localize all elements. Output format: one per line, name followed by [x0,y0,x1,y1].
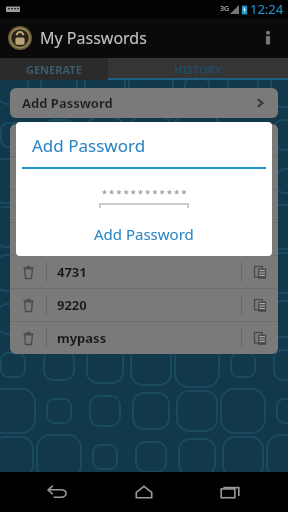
staticText: 9220 [57,296,87,314]
button[interactable]: Add Password [10,88,278,118]
button[interactable]: Delete [10,157,278,189]
button[interactable]: Delete [10,322,46,354]
button[interactable]: Home [116,472,172,512]
staticText: 3G [220,4,230,14]
button[interactable]: Delete [10,124,46,156]
staticText: GENERATE [26,62,82,77]
staticText: Add Password [22,94,113,112]
button[interactable]: Copy [242,256,278,288]
button[interactable]: Delete [10,223,46,255]
button[interactable]: Copy [242,157,278,189]
button[interactable]: Copy [242,289,278,321]
button[interactable]: Copy [242,223,278,255]
staticText: Add Password [32,134,146,157]
staticText: Add Password [94,224,194,244]
button[interactable]: GENERATE [0,58,108,80]
button[interactable]: Delete [10,190,46,222]
button[interactable]: Delete [10,289,278,321]
staticText: 4731 [57,263,87,281]
button[interactable]: Copy [242,322,278,354]
button[interactable]: Delete [10,256,278,288]
button[interactable]: Delete [10,157,46,189]
button[interactable]: Delete [10,256,46,288]
staticText: 12:24 [250,0,284,18]
staticText: mypass [57,329,107,347]
button[interactable]: About [248,18,288,58]
button[interactable]: HISTORY [108,58,288,80]
staticText: * * * * * * * * * * * * [102,187,187,199]
button[interactable]: Delete [10,289,46,321]
staticText: ?M|{%W$+,TRW [57,131,159,149]
staticText: My Passwords [40,27,147,49]
button[interactable]: Copy [242,190,278,222]
button[interactable]: Recent apps [202,472,258,512]
button[interactable]: Delete [10,223,278,255]
staticText: HISTORY [174,62,222,77]
button[interactable]: Add Password [16,220,272,248]
button[interactable]: Back [30,472,86,512]
button[interactable]: Copy [242,124,278,156]
button[interactable]: Delete [10,190,278,222]
button[interactable]: Delete [10,322,278,354]
button[interactable]: Delete [10,124,278,156]
